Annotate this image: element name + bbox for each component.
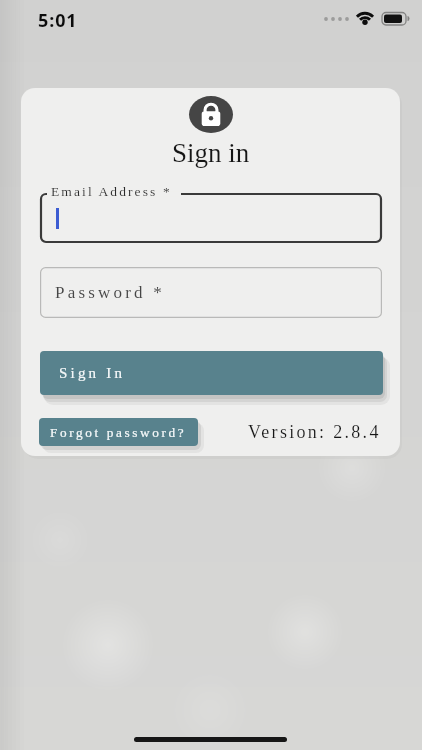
button[interactable]: Forgot password? (39, 418, 198, 446)
staticText: Password * (55, 283, 165, 302)
button[interactable]: Password * (40, 267, 382, 318)
button[interactable]: Sign In (40, 351, 383, 395)
staticText: Sign In (59, 365, 126, 382)
staticText: Forgot password? (50, 425, 187, 440)
staticText: 5:01 (38, 8, 78, 33)
staticText: Version: 2.8.4 (248, 422, 381, 442)
staticText: Sign in (172, 138, 250, 168)
button[interactable] (40, 193, 382, 243)
staticText: Email Address * (51, 184, 172, 199)
